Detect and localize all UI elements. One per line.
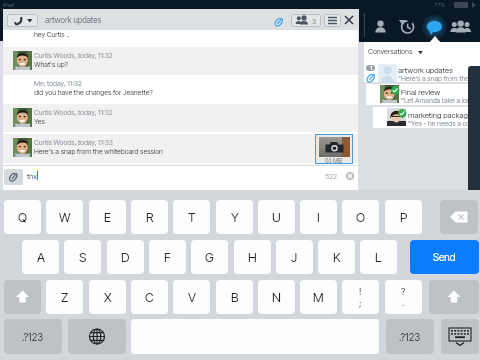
- button[interactable]: Change keyboard: [68, 319, 126, 354]
- button[interactable]: Attach file: [269, 12, 289, 32]
- button[interactable]: H: [234, 240, 271, 274]
- button[interactable]: ?: [385, 280, 422, 314]
- staticText: N: [272, 290, 281, 305]
- button[interactable]: A: [22, 240, 59, 274]
- button[interactable]: .?123: [386, 319, 434, 354]
- staticText: Curtis Woods, today, 11:32: [34, 51, 113, 59]
- button[interactable]: Call: [7, 14, 38, 27]
- button[interactable]: Clear: [346, 172, 354, 180]
- button[interactable]: V: [173, 280, 210, 314]
- staticText: "Here's a snap from the w: [398, 74, 477, 82]
- staticText: M: [313, 290, 324, 305]
- button[interactable]: .?123: [4, 319, 62, 354]
- button[interactable]: C: [131, 280, 168, 314]
- button[interactable]: marketing package: [373, 107, 480, 128]
- button[interactable]: R: [131, 200, 168, 234]
- staticText: G: [205, 250, 214, 265]
- staticText: "Yes - he needs a copy o: [408, 119, 480, 127]
- button[interactable]: O: [342, 200, 379, 234]
- button[interactable]: Attach: [4, 169, 23, 185]
- staticText: T: [188, 210, 196, 225]
- staticText: Me, today, 11:32: [34, 79, 82, 87]
- button[interactable]: Hide keyboard: [441, 319, 479, 354]
- staticText: Here's a snap from the whiteboard sessio…: [34, 147, 163, 156]
- staticText: A: [37, 250, 45, 265]
- staticText: S: [79, 250, 87, 265]
- button[interactable]: N: [258, 280, 295, 314]
- staticText: Z: [61, 290, 69, 305]
- staticText: .?123: [22, 331, 44, 343]
- button[interactable]: U: [258, 200, 295, 234]
- staticText: X: [104, 290, 112, 305]
- staticText: !: [359, 286, 362, 297]
- button[interactable]: S: [64, 240, 101, 274]
- button[interactable]: Shift: [429, 280, 479, 314]
- button[interactable]: G: [191, 240, 228, 274]
- staticText: .: [402, 297, 405, 308]
- staticText: C: [145, 290, 154, 305]
- staticText: Curtis Woods, today, 11:33: [34, 138, 113, 146]
- staticText: Final review: [401, 87, 441, 96]
- staticText: E: [104, 210, 111, 225]
- button[interactable]: X: [89, 280, 126, 314]
- staticText: O: [356, 210, 366, 225]
- button[interactable]: B: [216, 280, 253, 314]
- button[interactable]: Menu: [324, 14, 341, 27]
- staticText: What's up?: [34, 60, 68, 69]
- staticText: D: [121, 250, 130, 265]
- button[interactable]: Final review: [366, 84, 480, 105]
- button[interactable]: Curtis Woods, today, 11:33: [3, 134, 358, 163]
- staticText: Send: [433, 251, 456, 263]
- staticText: K: [333, 250, 341, 265]
- button[interactable]: W: [46, 200, 83, 234]
- button[interactable]: Backspace: [440, 200, 478, 234]
- staticText: H: [248, 250, 257, 265]
- staticText: 3: [312, 17, 317, 25]
- staticText: artwork updates: [45, 15, 102, 25]
- staticText: L: [375, 250, 382, 265]
- staticText: Yes: [34, 117, 45, 126]
- staticText: U: [272, 210, 281, 225]
- button[interactable]: Q: [4, 200, 41, 234]
- button[interactable]: Y: [216, 200, 253, 234]
- button[interactable]: F: [149, 240, 186, 274]
- staticText: Conversations: [368, 47, 413, 56]
- button[interactable]: D: [107, 240, 144, 274]
- staticText: thx: [27, 172, 37, 181]
- staticText: J: [291, 250, 298, 265]
- button[interactable]: Send: [410, 240, 479, 274]
- staticText: ?: [401, 286, 406, 297]
- button[interactable]: Shift: [4, 280, 41, 314]
- button[interactable]: K: [318, 240, 355, 274]
- button[interactable]: Curtis Woods, today, 11:32: [3, 47, 358, 76]
- button[interactable]: Me, today, 11:32: [3, 75, 358, 104]
- button[interactable]: I: [300, 200, 337, 234]
- staticText: F: [164, 250, 171, 265]
- staticText: 77%: [434, 1, 445, 8]
- staticText: R: [146, 210, 154, 225]
- button[interactable]: M: [300, 280, 337, 314]
- staticText: 522: [325, 172, 338, 181]
- button[interactable]: 1: [364, 62, 480, 82]
- staticText: V: [188, 290, 196, 305]
- staticText: did you have the changes for Jeanette?: [34, 88, 153, 97]
- button[interactable]: T: [173, 200, 210, 234]
- staticText: Q: [18, 210, 28, 225]
- button[interactable]: Photo attachment: [315, 134, 353, 164]
- staticText: iPad: [3, 1, 15, 8]
- button[interactable]: Curtis Woods, today, 11:32: [3, 104, 358, 132]
- staticText: marketing package: [408, 110, 473, 119]
- staticText: Curtis Woods, today, 11:32: [34, 108, 113, 116]
- button[interactable]: !: [342, 280, 379, 314]
- staticText: ;: [359, 297, 362, 308]
- button[interactable]: P: [385, 200, 422, 234]
- button[interactable]: L: [360, 240, 397, 274]
- button[interactable]: Close: [342, 13, 356, 27]
- button[interactable]: J: [276, 240, 313, 274]
- button[interactable]: Z: [46, 280, 83, 314]
- staticText: 0.1 MB: [325, 157, 342, 165]
- button[interactable]: E: [89, 200, 126, 234]
- staticText: B: [231, 290, 239, 305]
- button[interactable]: 3: [291, 14, 321, 27]
